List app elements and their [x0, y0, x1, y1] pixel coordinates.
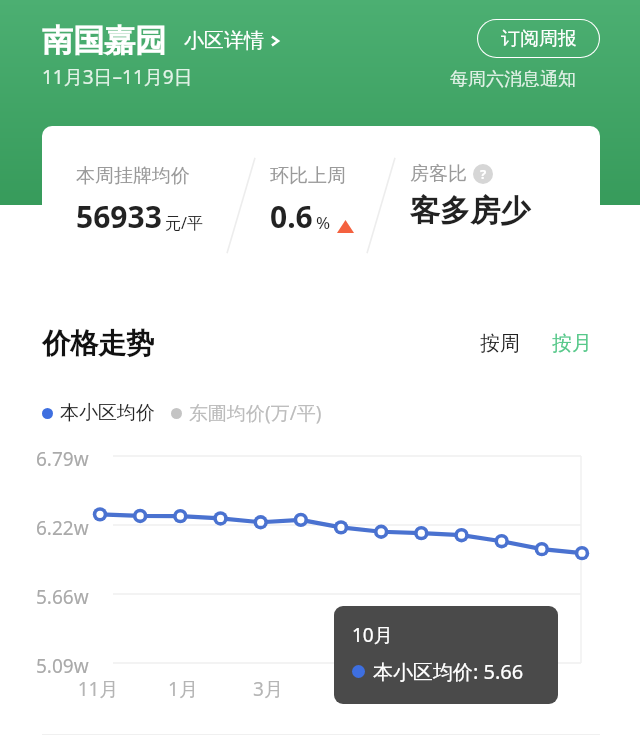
staticText: 本小区均价 [60, 401, 155, 425]
staticText: 11月3日–11月9日 [42, 64, 193, 90]
staticText: 客多房少 [410, 192, 530, 230]
staticText: 5月 [318, 676, 388, 702]
staticText: 10月 [352, 622, 393, 648]
staticText: 订阅周报 [501, 27, 577, 51]
staticText: 0.6 [270, 196, 313, 237]
staticText: 1月 [148, 676, 218, 702]
staticText: 按月 [552, 331, 592, 356]
staticText: 3月 [233, 676, 303, 702]
staticText: 房客比 [410, 162, 467, 186]
staticText: 5.09w [36, 653, 110, 679]
staticText: 56933 [76, 196, 162, 237]
staticText: 南国嘉园 [42, 21, 166, 60]
button[interactable]: 订阅周报 [477, 19, 600, 58]
staticText: 价格走势 [42, 326, 154, 361]
staticText: 7月 [403, 676, 473, 702]
staticText: 6.79w [36, 446, 110, 472]
button[interactable]: 按月 [544, 325, 600, 362]
staticText: 本周挂牌均价 [76, 164, 190, 188]
staticText: 元/平 [165, 212, 203, 234]
staticText: 东圃均价(万/平) [189, 400, 322, 426]
staticText: % [316, 211, 331, 234]
staticText: 6.22w [36, 515, 110, 541]
button[interactable]: 说明 [473, 164, 493, 184]
staticText: 环比上周 [270, 164, 346, 188]
staticText: 5.66w [36, 584, 110, 610]
staticText: 按周 [480, 331, 520, 356]
button[interactable]: 按周 [472, 325, 528, 362]
staticText: 11月 [63, 676, 133, 702]
button[interactable]: 本周挂牌均价 [42, 126, 600, 285]
staticText: 每周六消息通知 [450, 68, 576, 91]
staticText: 小区详情 [184, 28, 264, 53]
button[interactable]: 小区详情 [182, 24, 284, 57]
staticText: ? [480, 165, 487, 183]
staticText: 9月 [488, 676, 558, 702]
staticText: 本小区均价: 5.66 [373, 658, 524, 685]
